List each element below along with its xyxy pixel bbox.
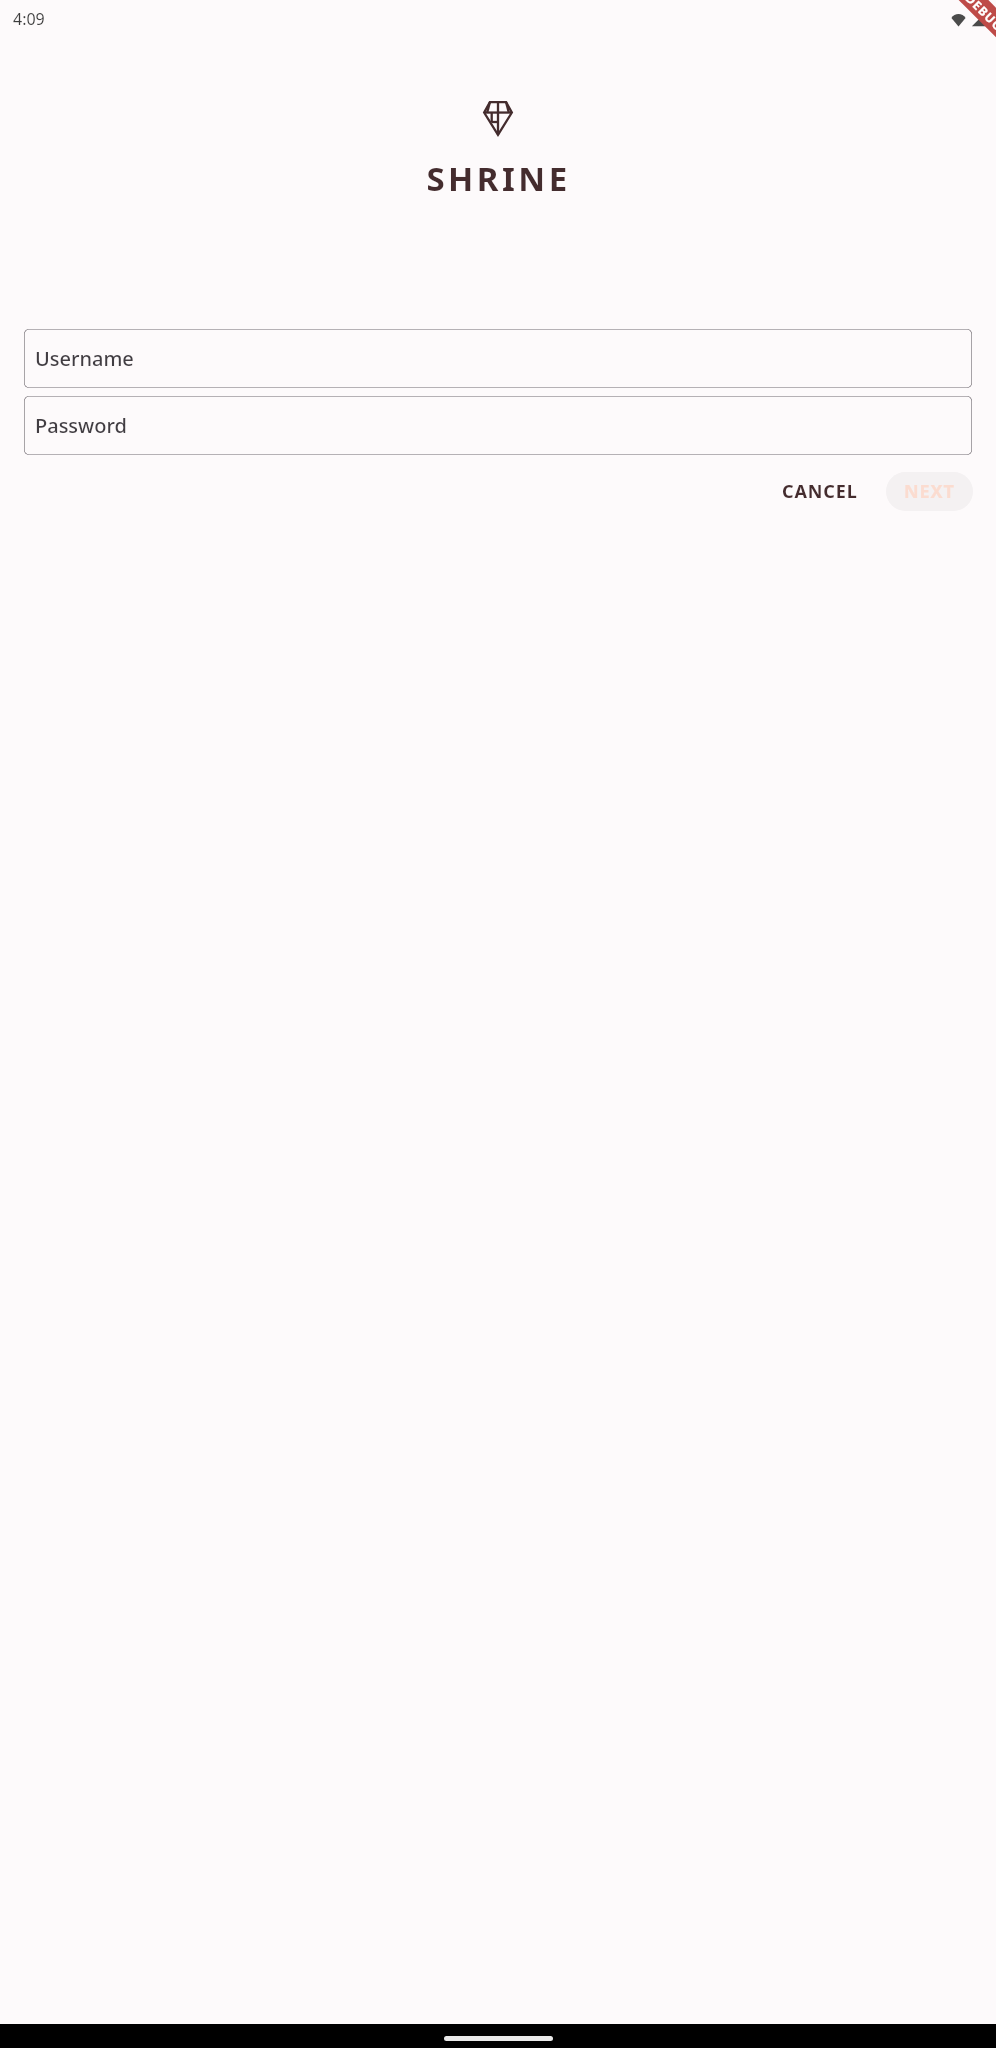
button[interactable]: CANCEL: [764, 467, 876, 516]
staticText: DEBUG: [963, 0, 996, 34]
staticText: SHRINE: [426, 156, 571, 201]
other: Home gesture bar: [444, 2036, 553, 2041]
button[interactable]: Password: [24, 396, 972, 455]
button[interactable]: Username: [24, 329, 972, 388]
button[interactable]: NEXT: [886, 472, 973, 511]
staticText: 4:09: [13, 8, 45, 30]
staticText: NEXT: [904, 479, 955, 504]
staticText: Password: [35, 412, 127, 439]
other: Debug banner: [924, 0, 996, 72]
staticText: Username: [35, 345, 134, 372]
staticText: CANCEL: [782, 479, 858, 504]
